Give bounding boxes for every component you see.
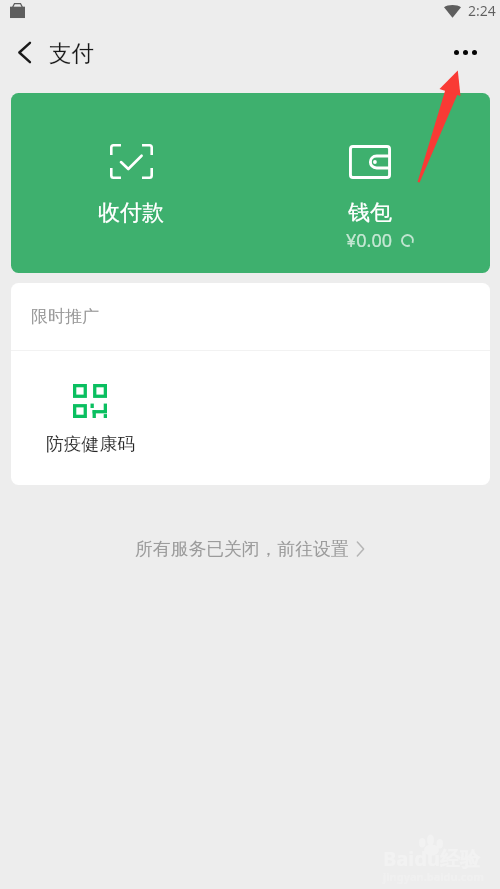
button[interactable]: More options	[447, 28, 500, 76]
staticText: 钱包	[348, 199, 392, 227]
button[interactable]: 钱包	[250, 93, 490, 273]
staticText: 所有服务已关闭，前往设置	[135, 538, 349, 560]
staticText: 2:24	[468, 1, 496, 20]
button[interactable]: 收付款	[11, 93, 250, 273]
staticText: 收付款	[98, 199, 164, 227]
button[interactable]: Back	[0, 28, 48, 76]
staticText: 限时推广	[31, 306, 99, 327]
staticText: 防疫健康码	[46, 433, 135, 455]
button[interactable]: 防疫健康码	[35, 373, 146, 466]
staticText: 支付	[49, 39, 94, 67]
button[interactable]: 所有服务已关闭，前往设置	[131, 534, 369, 564]
staticText: ¥0.00	[346, 228, 393, 253]
